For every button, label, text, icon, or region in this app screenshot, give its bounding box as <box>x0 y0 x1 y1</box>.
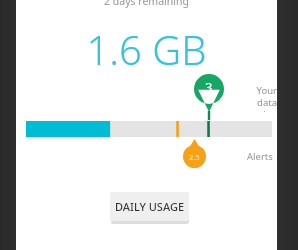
staticText: Alerts <box>247 150 273 163</box>
staticText: GB <box>204 96 214 106</box>
button[interactable]: Alert at 2.5 GB <box>183 139 206 168</box>
button[interactable] <box>26 121 272 137</box>
staticText: Your data plan <box>238 84 277 112</box>
button[interactable]: DAILY USAGE <box>110 192 189 221</box>
staticText: 2.5 <box>189 152 200 162</box>
staticText: 3 <box>205 78 213 96</box>
staticText: 1.6 GB <box>86 22 207 68</box>
staticText: DAILY USAGE <box>115 199 185 214</box>
staticText: 2 days remaining <box>104 0 189 8</box>
button[interactable]: Data plan limit 3 GB <box>194 74 224 120</box>
